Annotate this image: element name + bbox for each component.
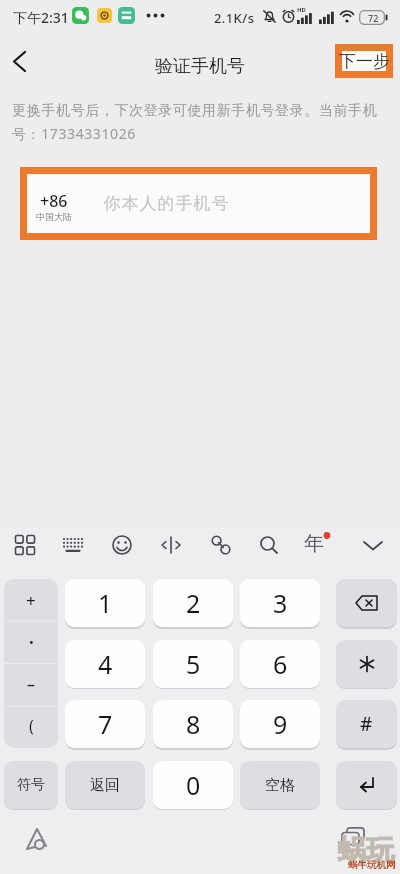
staticText: 3 (273, 586, 288, 620)
staticText: 年 (304, 531, 324, 556)
button[interactable]: 7 (65, 700, 145, 748)
button[interactable] (361, 533, 385, 557)
button[interactable] (61, 533, 85, 557)
button[interactable]: 0 (153, 761, 233, 809)
staticText: 下一步 (339, 51, 390, 72)
staticText: 8 (186, 707, 201, 741)
staticText: 蜗牛玩机网 (348, 859, 396, 871)
button[interactable]: 1 (65, 579, 145, 627)
staticText: 9 (273, 707, 288, 741)
button[interactable]: 9 (240, 700, 320, 748)
button[interactable]: 6 (240, 640, 320, 688)
button[interactable] (6, 47, 36, 77)
button[interactable]: 5 (153, 640, 233, 688)
button[interactable]: 4 (65, 640, 145, 688)
staticText: + (26, 589, 36, 612)
staticText: ( (29, 715, 34, 737)
button[interactable] (336, 579, 397, 627)
staticText: 返回 (90, 776, 120, 795)
staticText: 中国大陆 (36, 211, 72, 222)
button[interactable] (13, 533, 37, 557)
button[interactable]: + (4, 579, 58, 748)
staticText: 1 (98, 586, 113, 620)
staticText: 0 (186, 768, 201, 802)
staticText: 空格 (265, 776, 295, 795)
button[interactable]: 空格 (240, 761, 320, 809)
button[interactable]: 下一步 (335, 44, 393, 78)
staticText: 2.1K/s (214, 9, 255, 27)
button[interactable]: 8 (153, 700, 233, 748)
staticText: 验证手机号 (155, 55, 245, 78)
button[interactable] (22, 824, 54, 856)
staticText: 号：17334331026 (12, 124, 136, 143)
staticText: – (27, 673, 36, 695)
staticText: # (360, 711, 373, 737)
staticText: 你本人的手机号 (103, 193, 229, 214)
button[interactable] (159, 533, 183, 557)
button[interactable] (257, 533, 281, 557)
staticText: 5 (186, 647, 201, 681)
staticText: 72 (368, 12, 379, 24)
staticText: 7 (98, 707, 113, 741)
staticText: 蜗玩 (337, 833, 395, 868)
staticText: 2 (186, 586, 201, 620)
staticText: · (29, 631, 34, 654)
button[interactable] (110, 533, 134, 557)
button[interactable]: 年 (303, 531, 331, 559)
staticText: 下午2:31 (13, 8, 69, 27)
staticText: +86 (40, 190, 68, 212)
staticText: 6 (273, 647, 288, 681)
button[interactable]: # (336, 700, 397, 748)
button[interactable]: 返回 (65, 761, 145, 809)
button[interactable] (20, 167, 377, 240)
button[interactable]: 3 (240, 579, 320, 627)
staticText: 符号 (17, 776, 45, 794)
staticText: HD (297, 6, 306, 14)
button[interactable]: 符号 (4, 761, 58, 809)
button[interactable] (209, 533, 233, 557)
button[interactable] (336, 761, 397, 809)
button[interactable] (339, 824, 369, 850)
button[interactable]: 2 (153, 579, 233, 627)
staticText: 更换手机号后，下次登录可使用新手机号登录。当前手机 (12, 102, 377, 120)
button[interactable] (336, 640, 397, 688)
staticText: 4 (98, 647, 113, 681)
